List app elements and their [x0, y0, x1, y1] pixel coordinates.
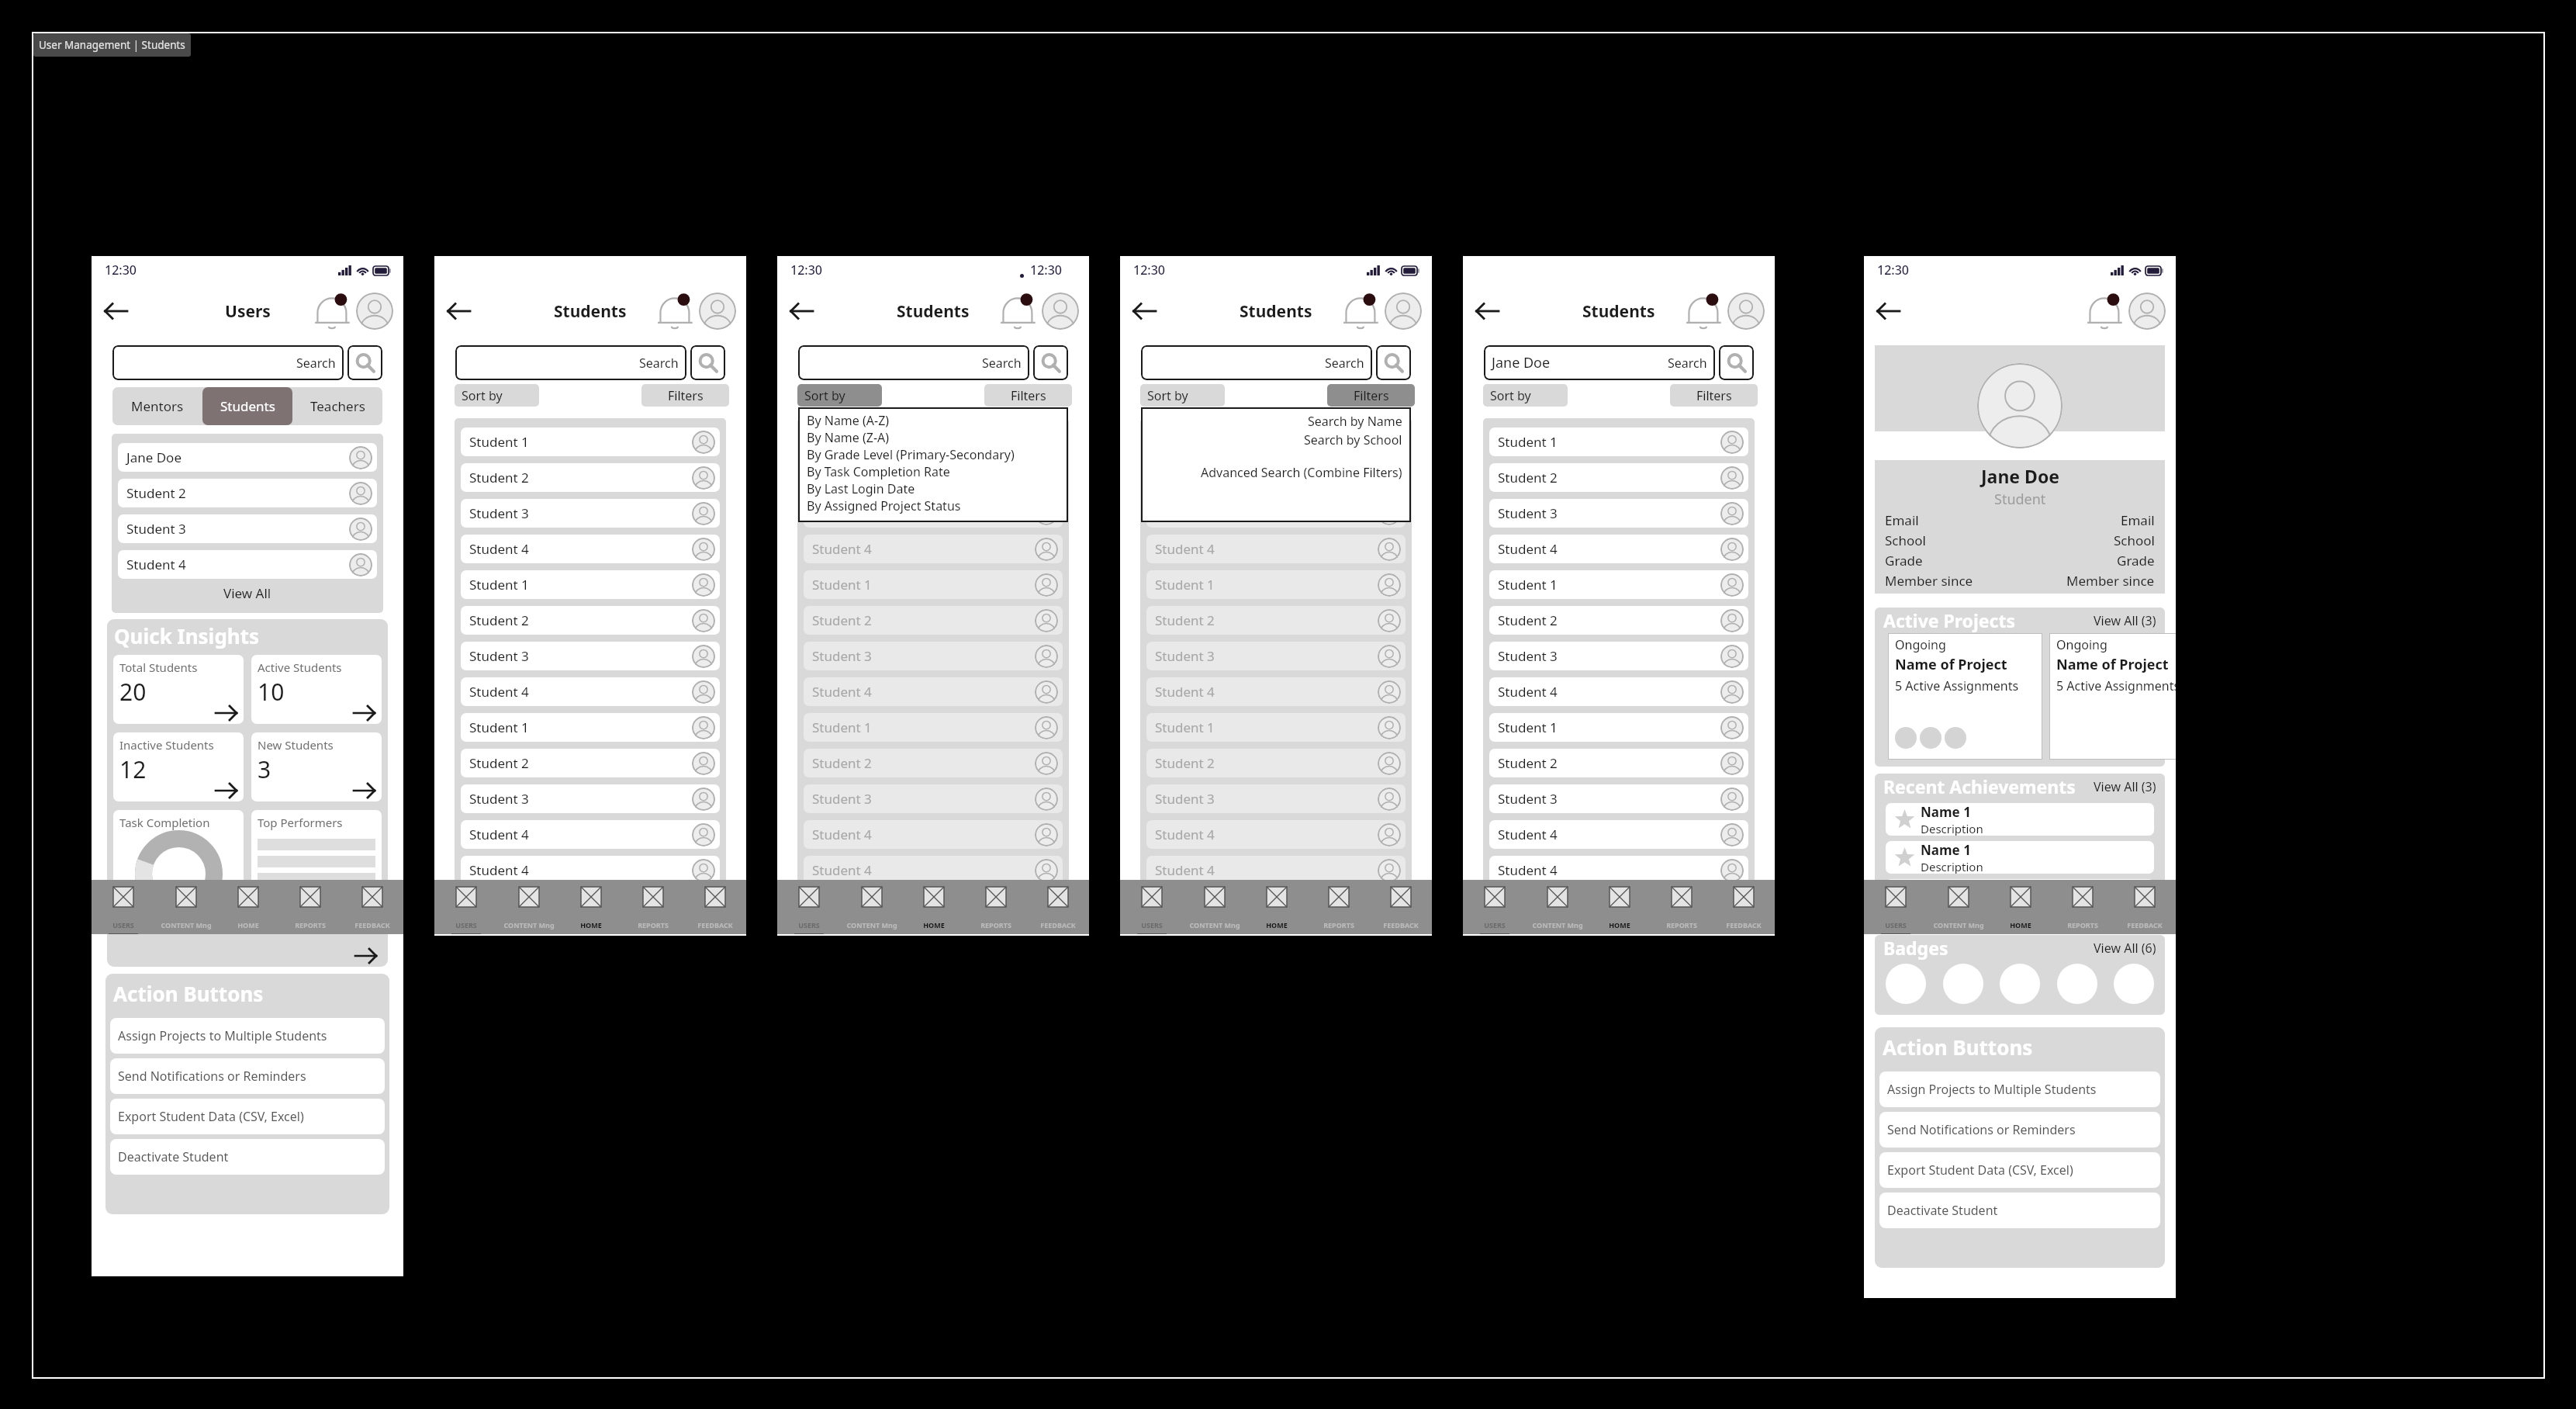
button[interactable]: Student 3 — [1489, 499, 1748, 528]
button[interactable]: Mentors — [112, 387, 202, 425]
button[interactable]: Student 4 — [804, 820, 1063, 849]
button[interactable]: By Last Login Date — [807, 480, 1068, 497]
button[interactable]: FEEDBACK — [2114, 880, 2176, 934]
button[interactable]: By Name (Z-A) — [807, 429, 1068, 446]
button[interactable]: USERS — [1864, 880, 1927, 934]
button[interactable]: Student 2 — [1489, 463, 1748, 492]
button[interactable]: FEEDBACK — [1370, 880, 1432, 934]
button[interactable]: Student 3 — [461, 642, 720, 670]
button[interactable]: Student 3 — [1489, 784, 1748, 813]
button[interactable]: HOME — [1990, 880, 2052, 934]
button[interactable]: By Name (A-Z) — [807, 412, 1068, 429]
button[interactable]: Student 1 — [804, 428, 1063, 456]
button[interactable]: Search — [690, 345, 725, 380]
button[interactable]: Back — [1870, 293, 1906, 329]
button[interactable]: Notifications — [1002, 293, 1039, 330]
button[interactable]: Task Completion — [113, 810, 244, 909]
button[interactable]: FEEDBACK — [684, 880, 746, 934]
button[interactable]: Deactivate Student — [110, 1139, 385, 1175]
button[interactable]: CONTENT Mng — [1927, 880, 1990, 934]
button[interactable]: Back — [1469, 293, 1505, 329]
button[interactable]: Sort by — [455, 384, 539, 407]
button[interactable]: Student 3 — [461, 784, 720, 813]
button[interactable]: CONTENT Mng — [1526, 880, 1589, 934]
button[interactable]: FEEDBACK — [341, 880, 403, 934]
button[interactable]: Student 3 — [1489, 642, 1748, 670]
button[interactable]: Profile — [1385, 293, 1422, 330]
button[interactable]: Search — [348, 345, 382, 380]
button[interactable]: Advanced Search (Combine Filters) — [1141, 463, 1402, 482]
button[interactable]: Sort by — [1140, 384, 1225, 407]
button[interactable]: Student 4 — [1489, 535, 1748, 563]
button[interactable]: New Students — [251, 732, 382, 801]
button[interactable]: HOME — [560, 880, 622, 934]
button[interactable]: FEEDBACK — [1713, 880, 1775, 934]
button[interactable]: Back — [441, 293, 476, 329]
button[interactable]: Student 4 — [1146, 535, 1406, 563]
button[interactable]: Back — [98, 293, 133, 329]
button[interactable]: By Grade Level (Primary-Secondary) — [807, 446, 1068, 463]
button[interactable]: Student 4 — [804, 535, 1063, 563]
button[interactable]: REPORTS — [1308, 880, 1370, 934]
button[interactable]: Notifications — [316, 293, 354, 330]
button[interactable]: HOME — [1246, 880, 1308, 934]
button[interactable] — [2114, 964, 2154, 1004]
button[interactable]: Search — [1376, 345, 1411, 380]
button[interactable]: Search — [1141, 345, 1372, 380]
button[interactable]: Student 4 — [1146, 856, 1406, 885]
button[interactable]: USERS — [1463, 880, 1526, 934]
button[interactable]: Sort by — [797, 384, 882, 407]
button[interactable]: Student 4 — [1146, 677, 1406, 706]
button[interactable]: Student 3 — [804, 499, 1063, 528]
button[interactable]: Student 2 — [804, 749, 1063, 777]
button[interactable]: REPORTS — [622, 880, 684, 934]
button[interactable]: Top Performers — [251, 810, 382, 909]
button[interactable]: View All — [118, 582, 377, 604]
button[interactable]: Student 1 — [1489, 713, 1748, 742]
button[interactable]: Student 1 — [1489, 570, 1748, 599]
button[interactable]: CONTENT Mng — [497, 880, 560, 934]
button[interactable]: Jane Doe — [118, 443, 377, 472]
button[interactable]: Ongoing — [2049, 633, 2176, 760]
button[interactable]: Student 4 — [118, 550, 377, 579]
button[interactable]: Search — [455, 345, 686, 380]
button[interactable]: USERS — [92, 880, 154, 934]
button[interactable]: Search by School — [1141, 431, 1402, 449]
button[interactable]: Student 2 — [1146, 749, 1406, 777]
button[interactable]: Assign Projects to Multiple Students — [110, 1018, 385, 1054]
button[interactable]: Student 4 — [1146, 820, 1406, 849]
button[interactable]: HOME — [903, 880, 965, 934]
button[interactable]: Search — [112, 345, 344, 380]
button[interactable]: Student 3 — [1146, 499, 1406, 528]
button[interactable]: USERS — [777, 880, 840, 934]
button[interactable]: CONTENT Mng — [840, 880, 903, 934]
button[interactable]: Search — [798, 345, 1029, 380]
button[interactable]: Filters — [984, 384, 1072, 407]
button[interactable]: Notifications — [659, 293, 697, 330]
button[interactable]: Student 4 — [461, 856, 720, 885]
button[interactable]: HOME — [1589, 880, 1651, 934]
button[interactable]: REPORTS — [965, 880, 1027, 934]
button[interactable]: Student 3 — [1146, 642, 1406, 670]
button[interactable]: Student 2 — [461, 463, 720, 492]
button[interactable]: Send Notifications or Reminders — [110, 1058, 385, 1094]
button[interactable]: Student 4 — [1489, 677, 1748, 706]
button[interactable]: Search — [1033, 345, 1068, 380]
button[interactable]: Deactivate Student — [1879, 1193, 2160, 1228]
button[interactable] — [2057, 964, 2097, 1004]
button[interactable]: Assign Projects to Multiple Students — [1879, 1071, 2160, 1107]
button[interactable]: Profile — [2128, 293, 2166, 330]
button[interactable]: Student 4 — [1489, 820, 1748, 849]
button[interactable]: Filters — [641, 384, 729, 407]
button[interactable]: Student 3 — [461, 499, 720, 528]
button[interactable]: Back — [1126, 293, 1162, 329]
button[interactable]: USERS — [434, 880, 497, 934]
button[interactable]: Student 4 — [804, 677, 1063, 706]
button[interactable]: Student 1 — [1146, 713, 1406, 742]
button[interactable]: By Task Completion Rate — [807, 463, 1068, 480]
button[interactable]: Student 2 — [804, 463, 1063, 492]
button[interactable]: Student 3 — [1146, 784, 1406, 813]
button[interactable]: Teachers — [292, 387, 382, 425]
button[interactable]: Student 4 — [461, 535, 720, 563]
button[interactable]: Student 4 — [461, 677, 720, 706]
